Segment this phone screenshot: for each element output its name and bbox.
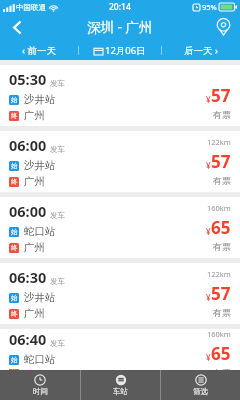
staticText: 中国联通 [16, 3, 46, 12]
staticText: 发车 [50, 79, 65, 88]
button[interactable]: 06:00 [0, 131, 240, 192]
staticText: 57 [211, 84, 231, 107]
staticText: 05:30 [9, 69, 47, 89]
staticText: 蛇口站 [24, 353, 56, 366]
staticText: 沙井站 [24, 93, 56, 106]
staticText: 122km [207, 269, 231, 279]
button[interactable]: 06:40 [0, 329, 240, 370]
button[interactable]: 05:30 [0, 65, 240, 126]
staticText: 筛选 [193, 387, 208, 396]
button[interactable]: 车站 [81, 370, 160, 400]
staticText: 06:30 [9, 267, 47, 287]
staticText: 后一天 › [184, 44, 218, 57]
staticText: 终 [11, 178, 18, 186]
staticText: 20:14 [109, 1, 131, 13]
staticText: 发车 [50, 145, 65, 154]
button[interactable]: 06:30 [0, 263, 240, 324]
staticText: 57 [211, 282, 231, 305]
staticText: 车站 [113, 387, 128, 396]
staticText: 06:00 [9, 135, 47, 155]
button[interactable]: Location [206, 14, 240, 40]
staticText: 06:40 [9, 329, 47, 349]
staticText: 终 [11, 112, 18, 120]
staticText: 终 [11, 244, 18, 252]
button[interactable]: 筛选 [161, 370, 240, 400]
staticText: 广州 [24, 175, 45, 188]
staticText: ¥ [206, 160, 211, 171]
staticText: 有票 [213, 109, 231, 120]
staticText: 沙井站 [24, 159, 56, 172]
staticText: 发车 [50, 211, 65, 220]
staticText: 蛇口站 [24, 225, 56, 238]
staticText: 有票 [213, 175, 231, 186]
staticText: 始 [11, 162, 18, 170]
staticText: 95% [202, 2, 217, 12]
staticText: 深圳 - 广州 [87, 18, 153, 36]
staticText: 65 [211, 342, 231, 365]
staticText: 160km [207, 203, 231, 213]
staticText: 发车 [50, 277, 65, 286]
staticText: 160km [207, 329, 231, 339]
staticText: ¥ [206, 226, 211, 237]
staticText: 57 [211, 150, 231, 173]
staticText: 终 [11, 310, 18, 318]
button[interactable]: 时间 [0, 370, 80, 400]
staticText: 有票 [213, 367, 231, 370]
staticText: 广州 [24, 241, 45, 254]
staticText: 终 [11, 369, 18, 370]
staticText: ¥ [206, 94, 211, 105]
staticText: 12月06日 [105, 44, 146, 57]
staticText: 始 [11, 356, 18, 364]
staticText: 122km [207, 137, 231, 147]
staticText: 发车 [50, 339, 65, 348]
staticText: 始 [11, 228, 18, 236]
staticText: 始 [11, 96, 18, 104]
staticText: 时间 [33, 387, 48, 396]
staticText: 广州 [24, 307, 45, 320]
button[interactable]: 12月06日 [79, 40, 161, 60]
staticText: ‹ 前一天 [22, 44, 56, 57]
staticText: 65 [211, 216, 231, 239]
button[interactable]: 06:00 [0, 197, 240, 258]
staticText: 有票 [213, 307, 231, 318]
staticText: ¥ [206, 292, 211, 303]
staticText: 有票 [213, 241, 231, 252]
staticText: 06:00 [9, 201, 47, 221]
staticText: 沙井站 [24, 291, 56, 304]
button[interactable]: Back [0, 14, 34, 40]
staticText: 广州 [24, 109, 45, 122]
staticText: ¥ [206, 352, 211, 363]
button[interactable]: 后一天 › [162, 40, 240, 60]
button[interactable]: ‹ 前一天 [0, 40, 78, 60]
staticText: 始 [11, 294, 18, 302]
